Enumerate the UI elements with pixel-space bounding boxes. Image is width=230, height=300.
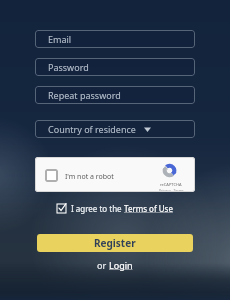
staticText: Country of residence xyxy=(48,123,136,135)
button[interactable]: I'm not a robot xyxy=(35,157,195,192)
staticText: I'm not a robot xyxy=(65,172,114,182)
staticText: Privacy - Terms xyxy=(159,188,184,192)
button[interactable]: Email xyxy=(35,30,195,48)
button[interactable]: Password xyxy=(35,58,195,76)
staticText: reCAPTCHA xyxy=(160,182,182,187)
staticText: Repeat password xyxy=(48,89,121,101)
staticText: I agree to the xyxy=(71,203,124,214)
staticText: Register xyxy=(94,236,136,250)
button[interactable]: Register xyxy=(37,234,193,252)
button[interactable]: Repeat password xyxy=(35,86,195,104)
staticText: Login xyxy=(109,259,133,271)
staticText: Password xyxy=(48,61,89,73)
staticText: Terms of Use xyxy=(124,203,173,214)
button[interactable]: I agree to the xyxy=(57,203,173,214)
button[interactable]: Country of residence xyxy=(35,120,195,138)
staticText: Email xyxy=(48,33,72,45)
button[interactable]: or xyxy=(97,259,133,271)
staticText: or xyxy=(97,259,109,271)
